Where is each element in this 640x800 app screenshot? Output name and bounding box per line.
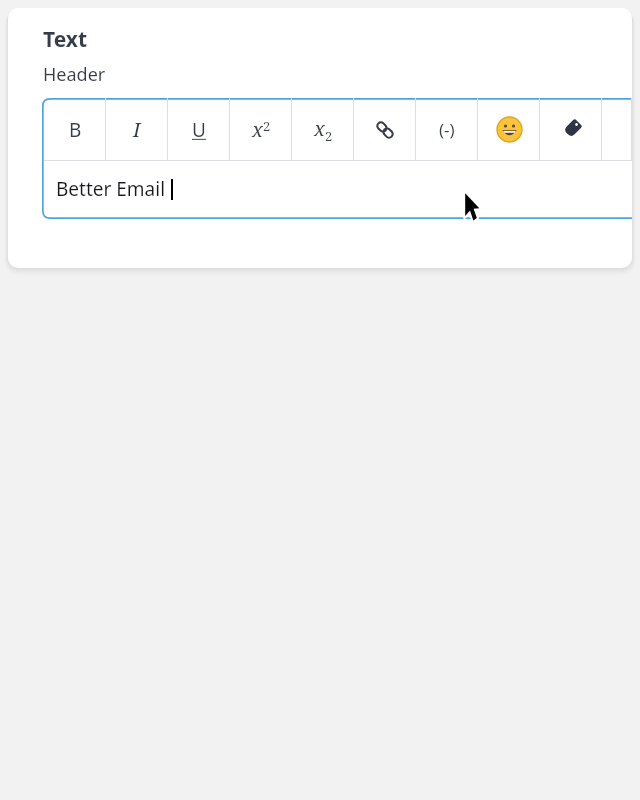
staticText: x2: [252, 116, 271, 143]
staticText: I: [133, 116, 141, 143]
button[interactable]: Insert tag: [540, 98, 602, 161]
staticText: x2: [314, 115, 333, 145]
staticText: Header: [43, 62, 106, 87]
button[interactable]: Horizontal rule: [416, 98, 478, 161]
staticText: Text: [43, 25, 88, 54]
staticText: B: [69, 117, 82, 143]
button[interactable]: Insert link: [354, 98, 416, 161]
button[interactable]: Superscript: [230, 98, 292, 161]
button[interactable]: Better Email: [44, 161, 632, 216]
staticText: (-): [439, 118, 455, 141]
staticText: U: [192, 117, 206, 143]
button[interactable]: Subscript: [292, 98, 354, 161]
button[interactable]: Underline: [168, 98, 230, 161]
button[interactable]: Bold: [44, 98, 106, 161]
button[interactable]: Italic: [106, 98, 168, 161]
button[interactable]: Insert emoji: [478, 98, 540, 161]
button[interactable]: More formatting: [602, 98, 632, 161]
staticText: Better Email: [56, 176, 166, 202]
